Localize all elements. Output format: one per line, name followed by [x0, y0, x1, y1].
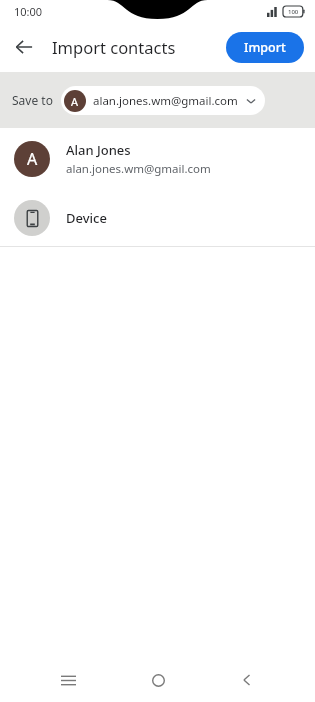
button[interactable]: Home [136, 658, 180, 702]
button[interactable]: Import [226, 32, 304, 63]
staticText: A [71, 94, 79, 109]
staticText: 10:00 [14, 4, 43, 19]
staticText: A [27, 148, 38, 170]
staticText: alan.jones.wm@gmail.com [66, 161, 211, 177]
staticText: Save to [12, 92, 53, 108]
staticText: Device [66, 209, 107, 227]
staticText: alan.jones.wm@gmail.com [93, 93, 238, 109]
button[interactable]: Recent apps [46, 658, 90, 702]
button[interactable]: Back [6, 29, 42, 65]
button[interactable]: A [61, 86, 265, 115]
button[interactable]: A [0, 128, 315, 190]
staticText: 100 [288, 8, 299, 16]
staticText: Import [244, 39, 286, 56]
button[interactable]: Device [0, 190, 315, 246]
staticText: Import contacts [52, 36, 176, 58]
button[interactable]: Back [225, 658, 269, 702]
staticText: Alan Jones [66, 141, 131, 159]
